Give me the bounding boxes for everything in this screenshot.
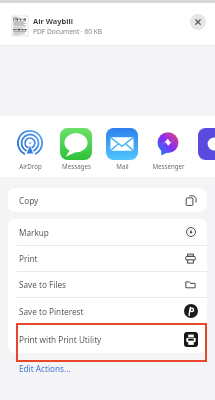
button[interactable]: AirDrop bbox=[7, 128, 53, 170]
staticText: Save to Pinterest bbox=[19, 306, 183, 317]
staticText: Edit Actions… bbox=[19, 363, 71, 374]
button[interactable]: Print with Print Utility bbox=[8, 325, 207, 353]
button[interactable]: Mail bbox=[99, 128, 145, 170]
staticText: Save to Files bbox=[19, 279, 183, 290]
button[interactable]: Markup bbox=[8, 219, 207, 245]
button[interactable]: Copy bbox=[8, 188, 207, 212]
staticText: Air Waybill bbox=[33, 16, 74, 26]
button[interactable]: Save to Files bbox=[8, 272, 207, 297]
button[interactable]: Save to Pinterest bbox=[8, 298, 207, 324]
button[interactable]: Messages bbox=[53, 128, 99, 170]
button[interactable]: Edit Actions… bbox=[19, 363, 71, 374]
staticText: Mail bbox=[116, 162, 129, 170]
staticText: Print with Print Utility bbox=[19, 334, 183, 345]
button[interactable] bbox=[191, 128, 215, 162]
staticText: Copy bbox=[19, 195, 183, 206]
button[interactable]: Close bbox=[190, 14, 206, 30]
staticText: Messenger bbox=[152, 162, 185, 170]
button[interactable]: Print bbox=[8, 246, 207, 271]
staticText: AirDrop bbox=[19, 162, 42, 170]
staticText: Messages bbox=[62, 162, 91, 170]
button[interactable]: Messenger bbox=[145, 128, 191, 170]
staticText: PDF Document · 60 KB bbox=[33, 27, 103, 36]
staticText: Print bbox=[19, 253, 183, 264]
staticText: Markup bbox=[19, 227, 183, 238]
